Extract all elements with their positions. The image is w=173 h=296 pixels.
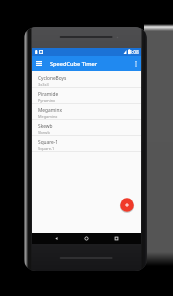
button[interactable]: Square-1	[32, 136, 141, 152]
button[interactable]: Skewb	[32, 120, 141, 136]
staticText: Megaminx	[38, 107, 62, 114]
button[interactable]: Back	[51, 233, 62, 244]
staticText: Skewb	[38, 123, 53, 130]
staticText: Square-1	[38, 146, 55, 151]
staticText: CycloneBoys	[38, 75, 67, 82]
button[interactable]: Recent apps	[111, 233, 122, 244]
staticText: Megaminx	[38, 114, 58, 119]
staticText: 3x3x3	[38, 82, 49, 87]
staticText: Piramide	[38, 91, 59, 98]
button[interactable]: More options	[131, 57, 141, 71]
button[interactable]: Megaminx	[32, 104, 141, 120]
staticText: 4:08	[129, 49, 139, 56]
staticText: SpeedCube Timer	[50, 60, 98, 68]
button[interactable]: Piramide	[32, 88, 141, 104]
button[interactable]: CycloneBoys	[32, 72, 141, 88]
staticText: Square-1	[38, 139, 59, 146]
staticText: Pyraminx	[38, 98, 56, 103]
staticText: Skewb	[38, 130, 50, 135]
button[interactable]: Add	[120, 198, 134, 212]
button[interactable]: Home	[81, 233, 92, 244]
button[interactable]: Open navigation drawer	[32, 56, 45, 70]
